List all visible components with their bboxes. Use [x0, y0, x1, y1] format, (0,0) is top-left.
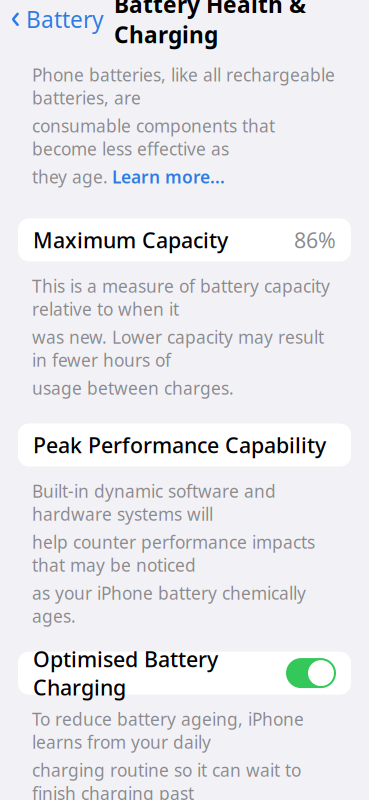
staticText: Built-in dynamic software and hardware s… [32, 479, 276, 525]
staticText: Battery [26, 4, 104, 34]
button[interactable]: Peak Performance Capability [18, 423, 351, 466]
button[interactable]: Learn more... [112, 165, 225, 188]
staticText: Learn more... [112, 165, 225, 188]
staticText: Battery Health & Charging [114, 0, 306, 49]
staticText: Optimised Battery Charging [33, 645, 218, 701]
staticText: Peak Performance Capability [33, 431, 326, 459]
button[interactable]: Maximum Capacity [18, 218, 351, 261]
staticText: Maximum Capacity [33, 226, 228, 254]
button[interactable]: Optimised Battery Charging [286, 658, 336, 688]
button[interactable]: Battery [0, 0, 104, 40]
staticText: usage between charges. [32, 376, 234, 399]
staticText: This is a measure of battery capacity re… [32, 274, 330, 320]
staticText: help counter performance impacts that ma… [32, 530, 315, 576]
staticText: consumable components that become less e… [32, 114, 275, 160]
staticText: 86% [294, 226, 336, 254]
staticText: charging routine so it can wait to finis… [32, 759, 301, 800]
staticText: they age. [32, 165, 108, 188]
staticText: was new. Lower capacity may result in fe… [32, 325, 324, 371]
staticText: as your iPhone battery chemically ages. [32, 582, 306, 628]
button[interactable]: Optimised Battery Charging [18, 652, 351, 695]
staticText: To reduce battery ageing, iPhone learns … [32, 708, 304, 754]
staticText: Phone batteries, like all rechargeable b… [32, 63, 335, 109]
